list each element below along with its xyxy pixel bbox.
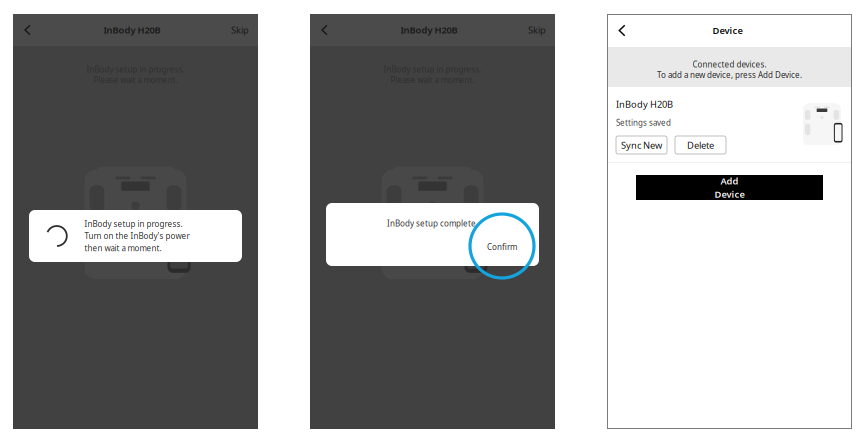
staticText: Skip [231, 24, 249, 36]
staticText: then wait a moment. [85, 243, 162, 253]
staticText: Device [712, 24, 742, 37]
staticText: InBody setup in progress. [85, 218, 183, 229]
button[interactable]: Back [607, 14, 637, 47]
staticText: Please wait a moment. [93, 75, 177, 85]
staticText: Add [720, 175, 738, 187]
staticText: Skip [528, 24, 546, 36]
staticText: InBody setup in progress. [86, 64, 184, 75]
button[interactable]: Sync New [616, 136, 667, 154]
staticText: Settings saved [616, 117, 671, 128]
staticText: Sync New [621, 139, 662, 151]
staticText: Confirm [487, 242, 517, 252]
staticText: Delete [687, 139, 714, 151]
staticText: Turn on the InBody's power [85, 231, 190, 241]
button[interactable]: Back [13, 14, 42, 46]
button[interactable]: Back [310, 14, 339, 46]
staticText: Connected devices. [692, 59, 766, 70]
button[interactable]: Confirm [479, 239, 525, 255]
button[interactable]: Skip [519, 14, 555, 46]
staticText: InBody setup in progress. [383, 64, 481, 75]
staticText: InBody H20B [103, 24, 160, 36]
staticText: InBody setup complete. [387, 218, 478, 229]
staticText: Device [714, 188, 744, 200]
staticText: InBody H20B [616, 98, 673, 110]
staticText: Please wait a moment. [390, 75, 474, 85]
staticText: To add a new device, press Add Device. [657, 70, 802, 80]
button[interactable]: Add [636, 175, 823, 200]
button[interactable]: Delete [675, 136, 726, 154]
staticText: InBody H20B [400, 24, 457, 36]
button[interactable]: Skip [222, 14, 258, 46]
